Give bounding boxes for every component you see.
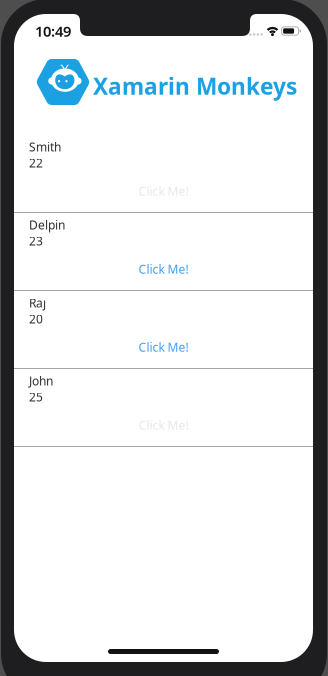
button[interactable]: Click Me! (14, 259, 313, 279)
staticText: Click Me! (138, 183, 188, 199)
staticText: Delpin (29, 217, 65, 233)
staticText: 23 (29, 233, 43, 249)
staticText: 22 (29, 155, 43, 171)
staticText: John (29, 373, 53, 389)
staticText: Raj (29, 295, 46, 311)
staticText: 20 (29, 311, 43, 327)
staticText: Xamarin Monkeys (93, 71, 297, 101)
staticText: Click Me! (138, 339, 188, 355)
button[interactable]: Click Me! (14, 337, 313, 357)
staticText: Click Me! (138, 261, 188, 277)
staticText: Smith (29, 139, 61, 155)
staticText: 25 (29, 389, 43, 405)
staticText: Click Me! (138, 417, 188, 433)
staticText: 10:49 (35, 21, 71, 41)
